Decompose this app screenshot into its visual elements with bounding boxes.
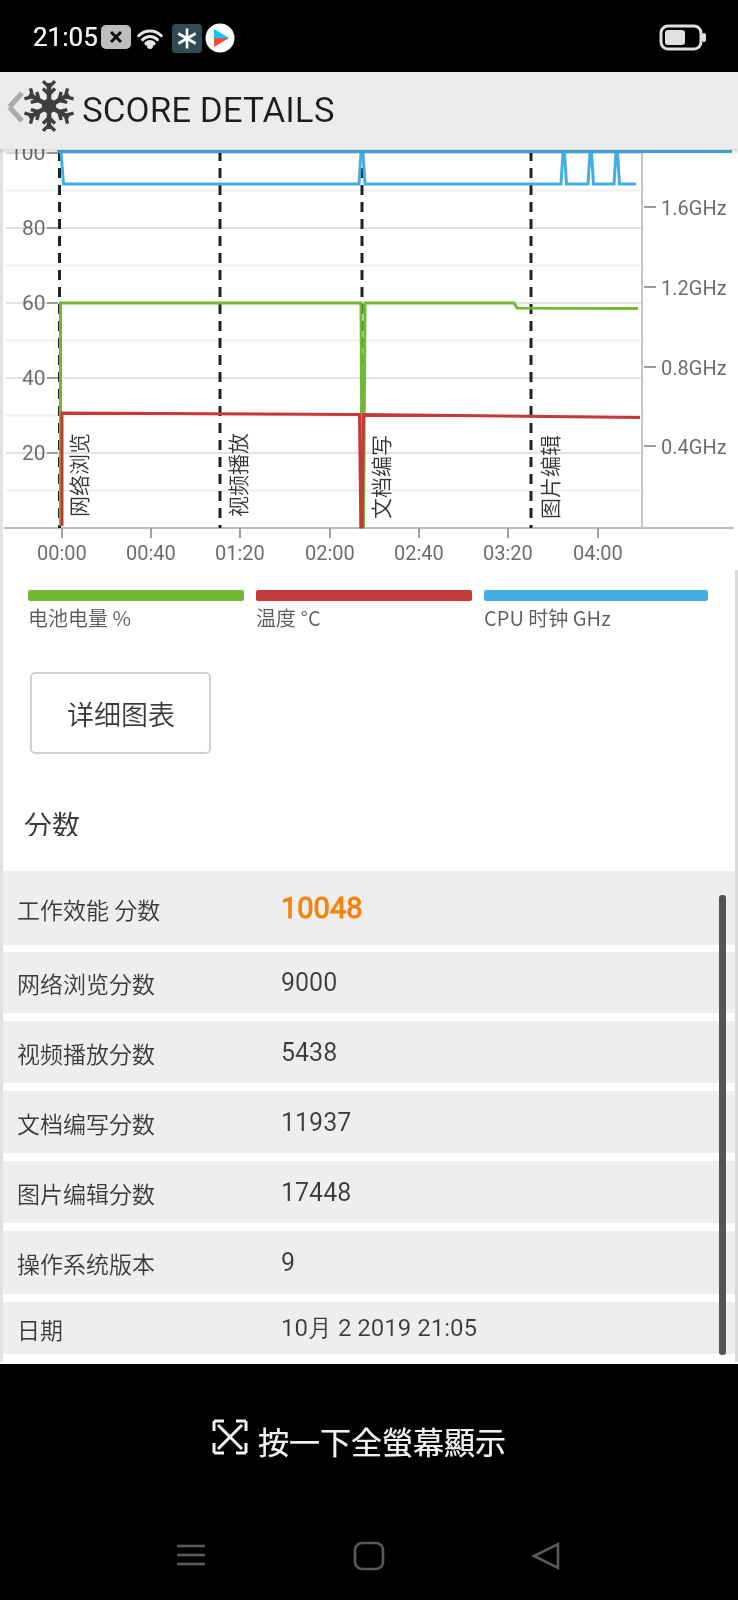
staticText: 20: [22, 441, 46, 465]
staticText: 图片编辑分数: [17, 1176, 155, 1209]
staticText: 温度 °C: [256, 603, 321, 629]
staticText: 文档编写: [365, 435, 395, 519]
button[interactable]: 网络浏览分数: [0, 952, 738, 1013]
staticText: 04:00: [573, 541, 623, 564]
staticText: 9000: [281, 968, 338, 997]
staticText: 03:20: [483, 541, 533, 564]
staticText: 视频播放分数: [17, 1036, 155, 1069]
button[interactable]: [521, 1528, 573, 1578]
staticText: 60: [22, 291, 46, 315]
button[interactable]: 日期: [0, 1302, 738, 1354]
staticText: 1.6GHz: [661, 196, 727, 219]
staticText: 100: [10, 141, 46, 165]
button[interactable]: 图片编辑分数: [0, 1161, 738, 1223]
staticText: CPU 时钟 GHz: [484, 603, 611, 629]
staticText: 文档编写分数: [17, 1106, 155, 1139]
staticText: 工作效能 分数: [17, 892, 161, 925]
staticText: 11937: [281, 1108, 352, 1137]
staticText: 00:40: [126, 541, 176, 564]
staticText: 40: [22, 366, 46, 390]
staticText: 0.4GHz: [661, 435, 727, 458]
staticText: SCORE DETAILS: [82, 90, 335, 131]
staticText: 9: [281, 1248, 296, 1277]
staticText: 网络浏览: [63, 433, 93, 517]
staticText: 0.8GHz: [661, 356, 727, 379]
button[interactable]: 详细图表: [30, 672, 211, 754]
staticText: 00:00: [37, 541, 87, 564]
staticText: 操作系统版本: [17, 1246, 155, 1279]
staticText: 80: [22, 216, 46, 240]
staticText: 21:05: [33, 22, 98, 52]
staticText: 分数: [24, 804, 81, 836]
staticText: 1.2GHz: [661, 276, 727, 299]
staticText: 网络浏览分数: [17, 966, 155, 999]
button[interactable]: [205, 1412, 535, 1462]
staticText: 视频播放: [222, 433, 252, 517]
button[interactable]: 工作效能 分数: [0, 871, 738, 945]
button[interactable]: [343, 1528, 395, 1578]
staticText: 按一下全螢幕顯示: [258, 1418, 506, 1458]
staticText: 5438: [281, 1038, 338, 1067]
staticText: 10048: [281, 891, 363, 925]
button[interactable]: [0, 72, 80, 149]
staticText: 图片编辑: [534, 435, 564, 519]
staticText: 日期: [17, 1312, 63, 1345]
button[interactable]: [165, 1528, 217, 1578]
staticText: 电池电量 %: [28, 603, 131, 629]
button[interactable]: 操作系统版本: [0, 1231, 738, 1294]
staticText: 17448: [281, 1178, 352, 1207]
button[interactable]: 文档编写分数: [0, 1091, 738, 1153]
staticText: 10月 2 2019 21:05: [281, 1313, 478, 1343]
staticText: 02:40: [394, 541, 444, 564]
staticText: 01:20: [215, 541, 265, 564]
staticText: 02:00: [305, 541, 355, 564]
button[interactable]: 视频播放分数: [0, 1021, 738, 1083]
staticText: 详细图表: [67, 694, 175, 733]
